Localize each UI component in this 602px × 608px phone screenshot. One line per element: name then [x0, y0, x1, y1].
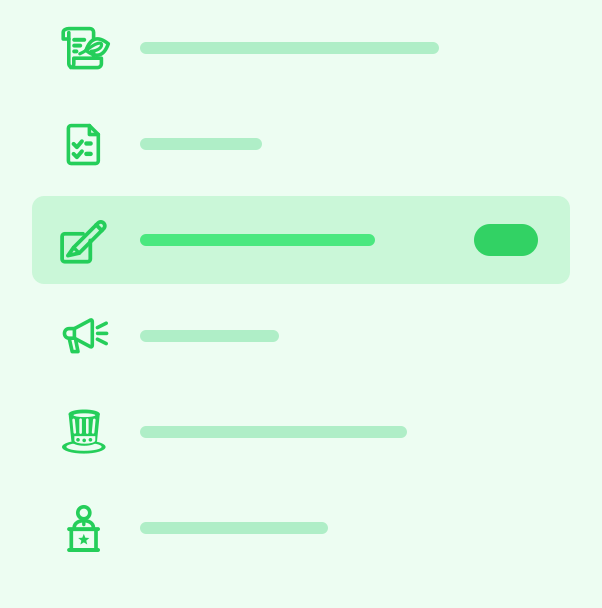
button[interactable]: Speakers [0, 484, 602, 572]
button[interactable]: Edit [0, 196, 602, 284]
button[interactable]: Contract [0, 4, 602, 92]
button[interactable]: Events [0, 388, 602, 476]
button[interactable]: Checklist [0, 100, 602, 188]
button[interactable]: Announcements [0, 292, 602, 380]
